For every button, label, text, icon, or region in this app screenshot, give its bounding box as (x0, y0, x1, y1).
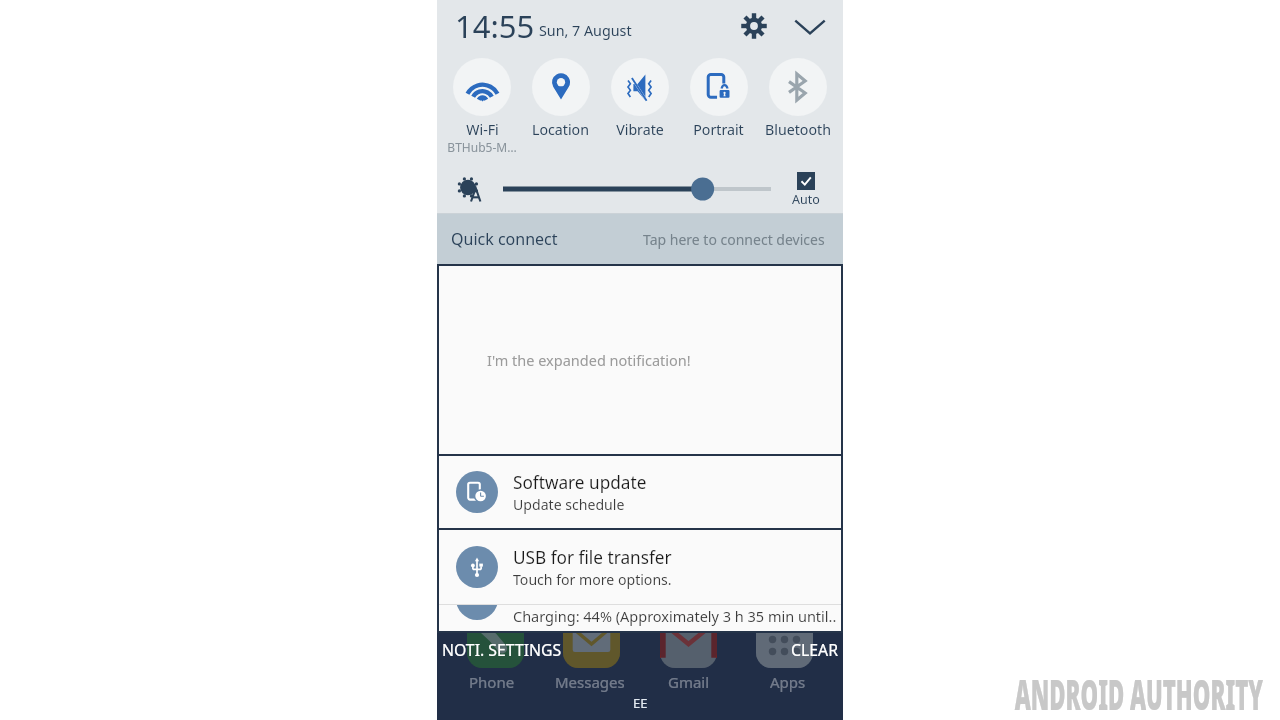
staticText: Bluetooth (765, 120, 831, 139)
staticText: Vibrate (616, 120, 664, 139)
button[interactable]: Bluetooth (758, 58, 837, 139)
staticText: Sun, 7 August (539, 21, 632, 40)
staticText: Gmail (668, 672, 710, 692)
staticText: Location (532, 120, 589, 139)
staticText: Auto (792, 191, 820, 208)
staticText: Quick connect (451, 228, 558, 250)
staticText: Messages (555, 672, 625, 692)
button[interactable]: NOTI. SETTINGS (438, 633, 566, 667)
button[interactable]: Portrait (679, 58, 758, 139)
button[interactable]: Brightness (503, 181, 771, 197)
staticText: Apps (770, 672, 806, 692)
button[interactable]: Auto (786, 172, 826, 208)
button[interactable]: Quick connect (437, 214, 843, 264)
staticText: Phone (469, 672, 515, 692)
button[interactable]: Vibrate (600, 58, 679, 139)
button[interactable]: Settings (735, 7, 773, 45)
staticText: Tap here to connect devices (643, 230, 825, 249)
staticText: USB for file transfer (513, 546, 672, 569)
staticText: NOTI. SETTINGS (442, 639, 562, 661)
button[interactable]: CLEAR (787, 633, 842, 667)
staticText: EE (633, 694, 648, 712)
staticText: Touch for more options. (513, 570, 672, 589)
staticText: 14:55 (455, 5, 535, 47)
staticText: I'm the expanded notification! (487, 350, 691, 370)
staticText: Software update (513, 471, 647, 494)
staticText: CLEAR (791, 639, 838, 661)
button[interactable]: Wi-Fi (443, 58, 521, 155)
staticText: Wi-Fi (466, 120, 499, 139)
staticText: BTHub5-M… (447, 139, 517, 155)
button[interactable]: I'm the expanded notification! (439, 266, 841, 454)
button[interactable]: Location (521, 58, 600, 139)
staticText: Portrait (693, 120, 744, 139)
button[interactable]: Software update (439, 456, 841, 528)
button[interactable]: USB for file transfer (439, 530, 841, 631)
staticText: Charging: 44% (Approximately 3 h 35 min … (513, 606, 837, 626)
staticText: Update schedule (513, 495, 625, 514)
staticText: ANDROID AUTHORITY (1015, 665, 1263, 720)
button[interactable]: Collapse (791, 7, 829, 45)
